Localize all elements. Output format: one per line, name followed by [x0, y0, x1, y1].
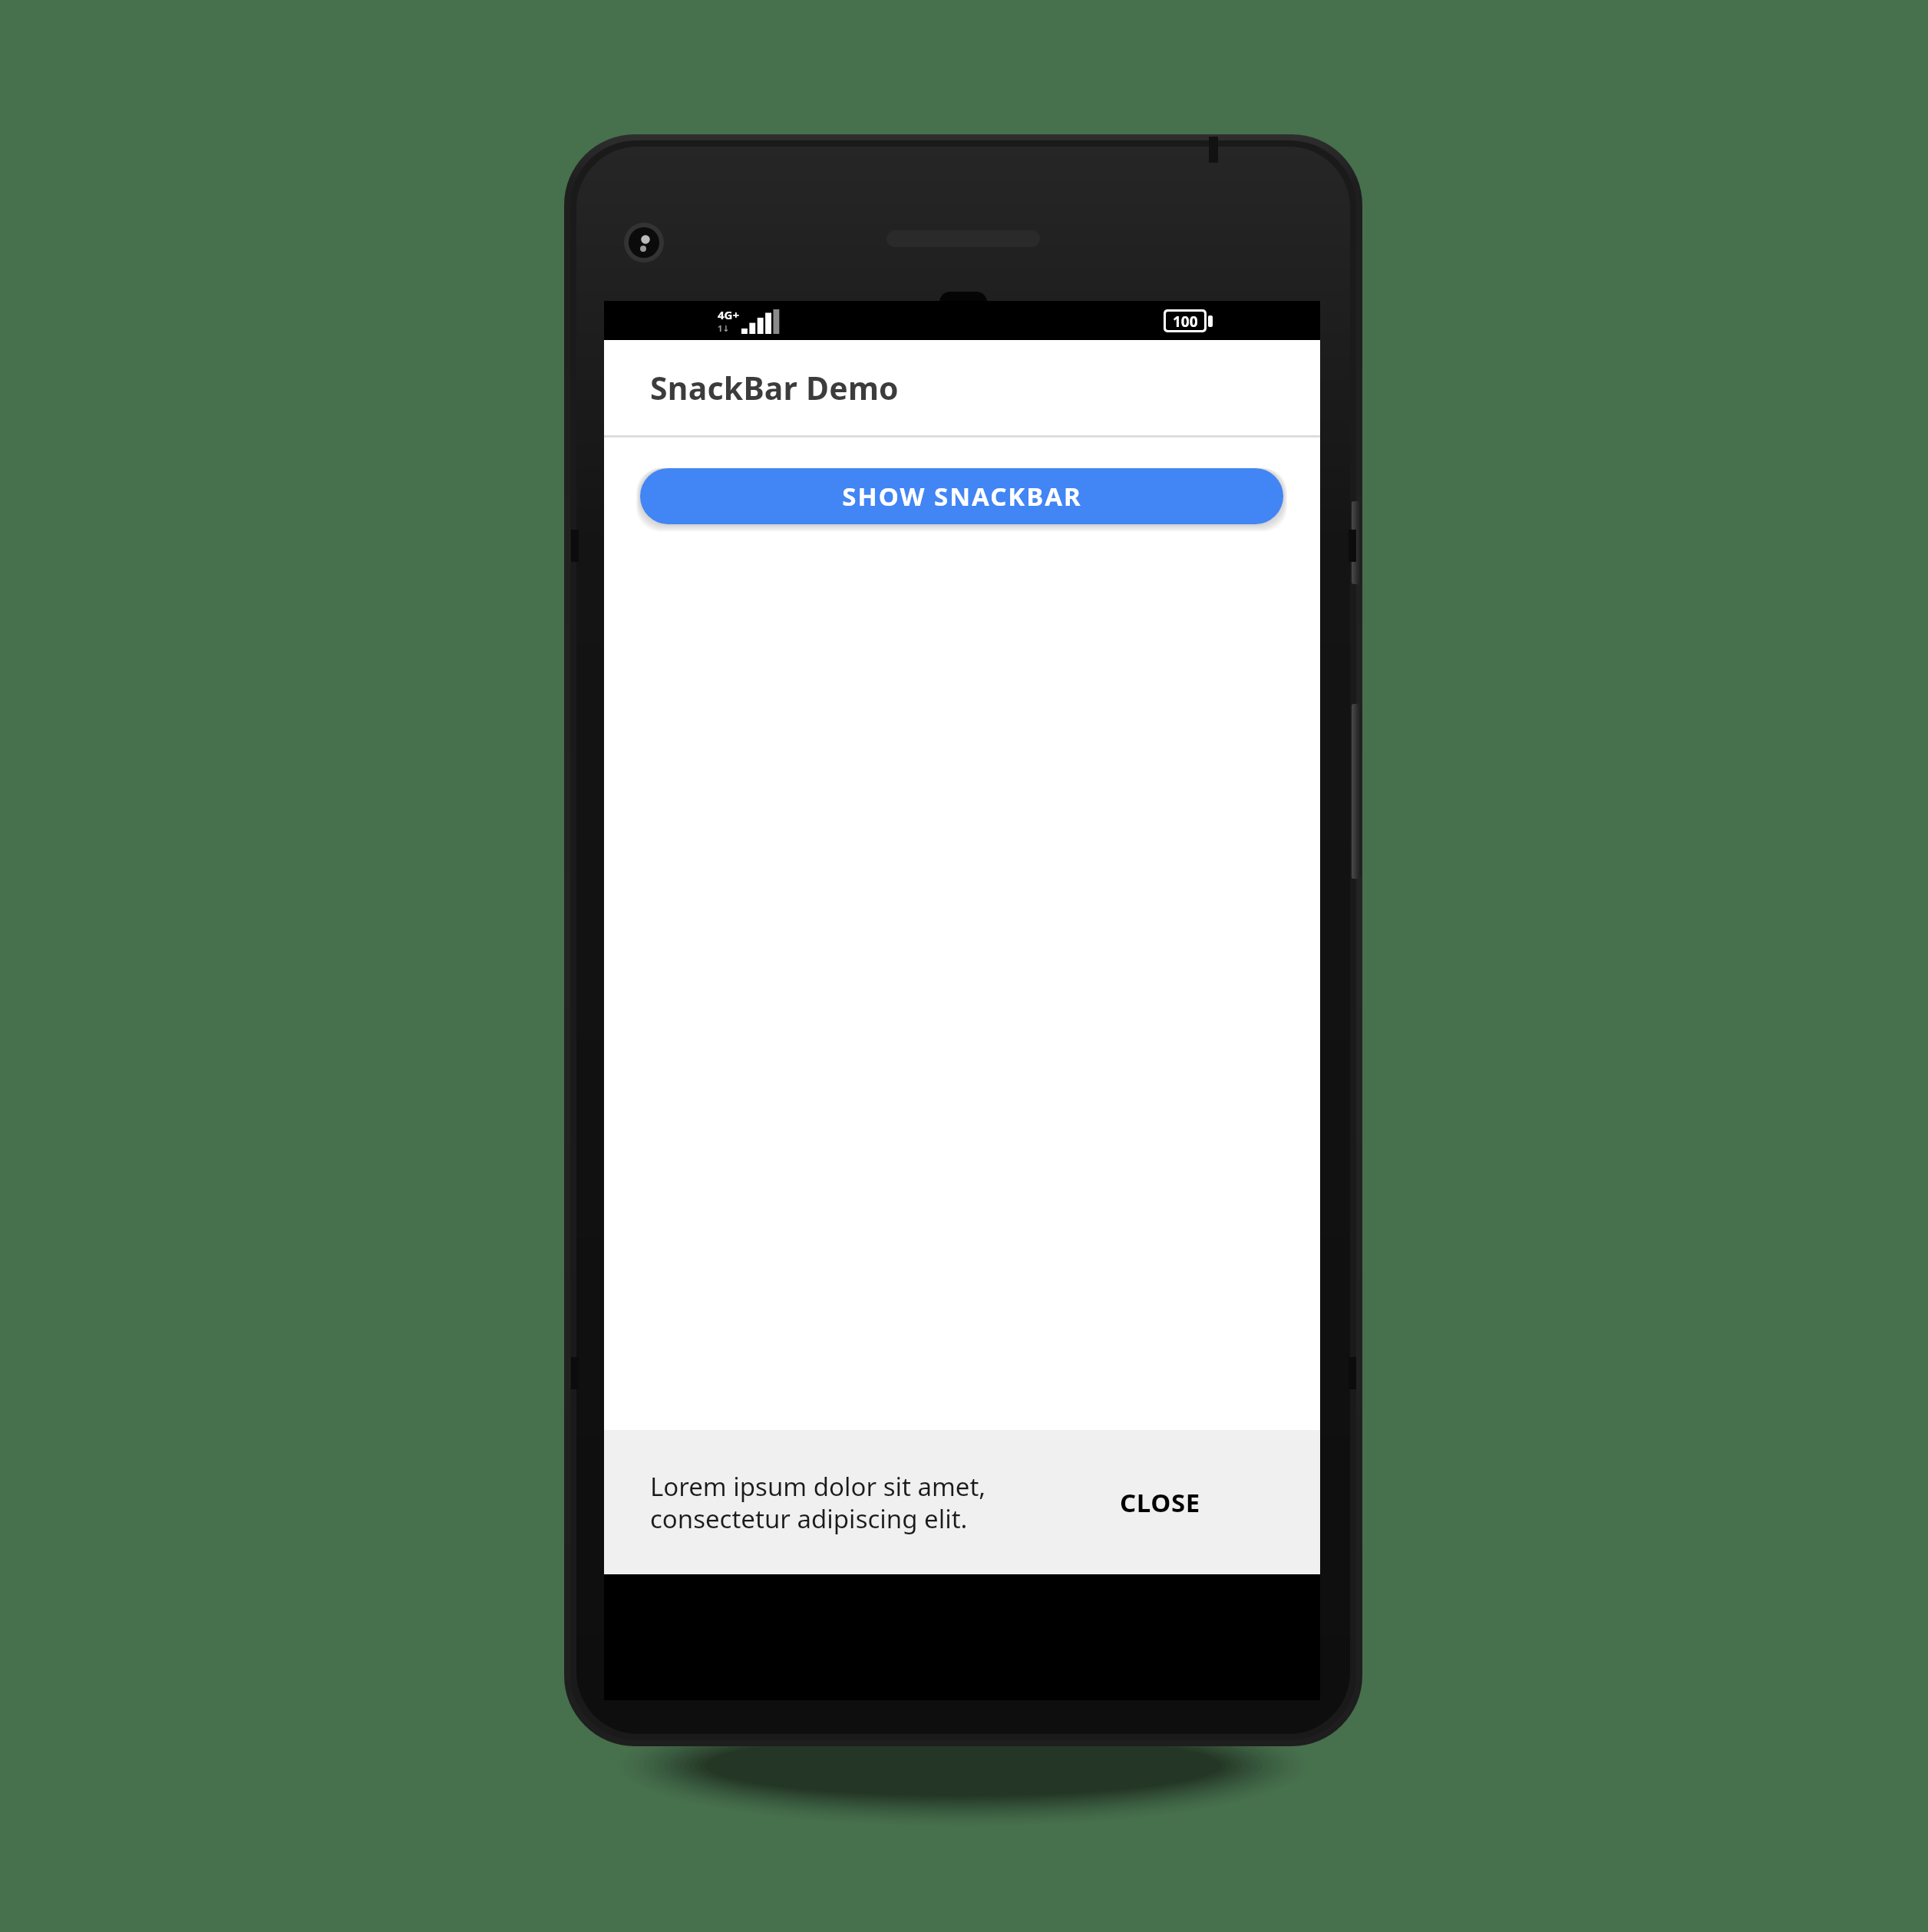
staticText: SHOW SNACKBAR [842, 479, 1082, 514]
staticText: 1↓ [718, 322, 730, 334]
staticText: SnackBar Demo [650, 366, 899, 409]
staticText: Lorem ipsum dolor sit amet, consectetur … [650, 1469, 1080, 1536]
staticText: 100 [1173, 312, 1198, 330]
button[interactable]: SHOW SNACKBAR [640, 468, 1283, 524]
button[interactable]: CLOSE [1081, 1430, 1273, 1574]
staticText: 4G+ [718, 307, 740, 322]
staticText: CLOSE [1120, 1485, 1200, 1520]
